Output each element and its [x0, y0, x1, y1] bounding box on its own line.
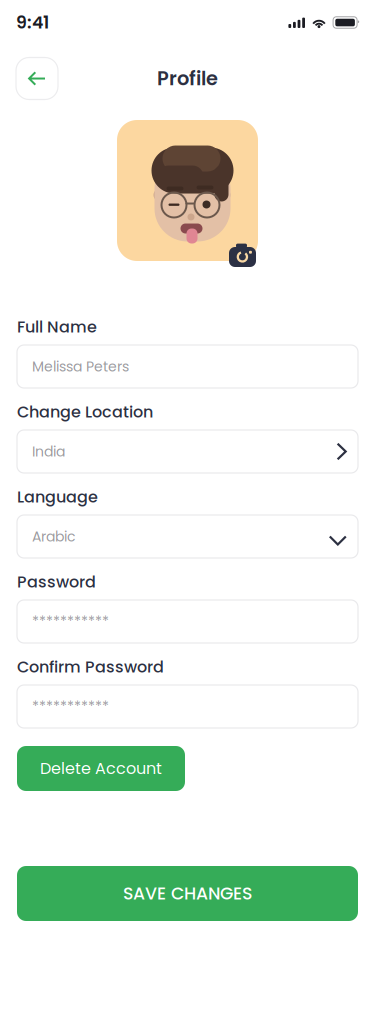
staticText: ***********	[32, 696, 109, 717]
staticText: Password	[17, 571, 96, 593]
staticText: Confirm Password	[17, 656, 164, 678]
staticText: Melissa Peters	[32, 357, 129, 376]
staticText: Full Name	[17, 316, 97, 338]
staticText: Change Location	[17, 401, 153, 423]
staticText: SAVE CHANGES	[123, 881, 252, 906]
staticText: Language	[17, 486, 98, 508]
button[interactable]: Delete Account	[17, 746, 185, 791]
staticText: Delete Account	[40, 757, 162, 780]
staticText: 9:41	[16, 10, 49, 35]
staticText: ***********	[32, 611, 109, 632]
staticText: India	[32, 442, 65, 461]
staticText: Arabic	[32, 527, 75, 546]
button[interactable]: Back	[16, 57, 58, 99]
button[interactable]: Change photo	[229, 244, 258, 267]
staticText: Profile	[157, 65, 218, 92]
button[interactable]: SAVE CHANGES	[17, 866, 358, 921]
